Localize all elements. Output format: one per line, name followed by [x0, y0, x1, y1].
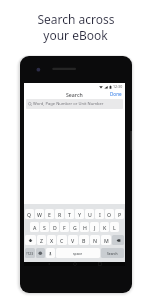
staticText: G	[73, 224, 77, 231]
button[interactable]: A	[30, 222, 39, 232]
staticText: Search	[66, 91, 83, 98]
staticText: D	[53, 224, 57, 231]
button[interactable]: Home	[72, 262, 78, 266]
button[interactable]: ?123	[25, 248, 35, 258]
button[interactable]: P	[115, 209, 124, 219]
button[interactable]: E	[45, 209, 54, 219]
button[interactable]: Voice input	[46, 248, 55, 258]
staticText: E	[48, 211, 51, 218]
button[interactable]: Q	[25, 209, 34, 219]
staticText: O	[107, 211, 112, 218]
button[interactable]: S	[40, 222, 49, 232]
button[interactable]: space	[56, 248, 100, 258]
button[interactable]: Search	[101, 248, 124, 258]
staticText: H	[83, 224, 87, 231]
button[interactable]: M	[101, 235, 111, 245]
button[interactable]: Back	[46, 262, 52, 266]
staticText: F	[63, 224, 66, 231]
button[interactable]: W	[35, 209, 44, 219]
staticText: your eBook	[43, 27, 108, 43]
staticText: Done	[110, 91, 122, 97]
staticText: Search across	[37, 11, 115, 27]
button[interactable]: Z	[37, 235, 46, 245]
button[interactable]: D	[50, 222, 59, 232]
staticText: Word, Page Number or Unit Number	[33, 101, 104, 107]
staticText: Y	[78, 211, 82, 218]
button[interactable]: Shift	[25, 235, 36, 245]
button[interactable]: G	[70, 222, 79, 232]
staticText: S	[43, 224, 46, 231]
staticText: M	[104, 237, 109, 244]
staticText: X	[50, 237, 54, 244]
button[interactable]: B	[79, 235, 89, 245]
staticText: Q	[27, 211, 32, 218]
button[interactable]: H	[80, 222, 89, 232]
staticText: J	[94, 224, 96, 231]
button[interactable]: J	[90, 222, 99, 232]
button[interactable]: T	[65, 209, 74, 219]
staticText: R	[58, 211, 62, 218]
staticText: L	[113, 224, 116, 231]
staticText: P	[118, 211, 122, 218]
staticText: U	[88, 211, 92, 218]
button[interactable]: N	[90, 235, 100, 245]
staticText: K	[103, 224, 107, 231]
button[interactable]: L	[110, 222, 119, 232]
button[interactable]: O	[105, 209, 114, 219]
staticText: N	[93, 237, 98, 244]
button[interactable]: R	[55, 209, 64, 219]
staticText: ?123	[26, 251, 34, 255]
button[interactable]: I	[95, 209, 104, 219]
staticText: A	[33, 224, 37, 231]
button[interactable]: Recent apps	[97, 262, 103, 266]
staticText: B	[82, 237, 86, 244]
button[interactable]: Y	[75, 209, 84, 219]
button[interactable]: U	[85, 209, 94, 219]
staticText: 12:30	[113, 84, 123, 89]
staticText: space	[73, 251, 83, 255]
button[interactable]: Backspace	[112, 235, 124, 245]
button[interactable]: X	[47, 235, 56, 245]
button[interactable]: Emoji	[36, 248, 45, 258]
staticText: W	[37, 211, 42, 218]
staticText: Z	[40, 237, 43, 244]
staticText: T	[68, 211, 71, 218]
staticText: V	[71, 237, 75, 244]
staticText: Search	[107, 251, 118, 255]
button[interactable]: Done	[107, 89, 125, 99]
button[interactable]: V	[68, 235, 78, 245]
button[interactable]: K	[100, 222, 109, 232]
button[interactable]: F	[60, 222, 69, 232]
button[interactable]: C	[57, 235, 67, 245]
staticText: I	[99, 211, 101, 218]
button[interactable]: Word, Page Number or Unit Number	[26, 99, 123, 109]
staticText: C	[60, 237, 64, 244]
